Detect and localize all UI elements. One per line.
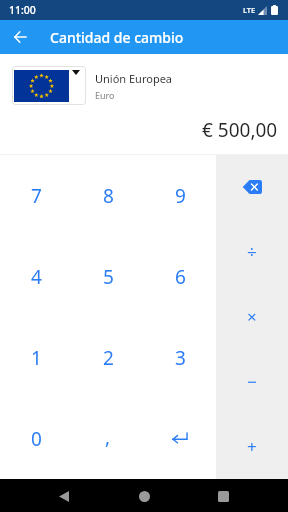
button[interactable]: 4 [0, 236, 72, 317]
staticText: LTE [243, 5, 256, 15]
button[interactable]: 9 [144, 155, 216, 236]
button[interactable]: 2 [72, 317, 144, 398]
staticText: × [247, 305, 257, 328]
button[interactable]: Back [0, 20, 40, 54]
staticText: 0 [31, 426, 42, 452]
staticText: € 500,00 [202, 117, 278, 143]
staticText: ÷ [247, 240, 257, 263]
button[interactable]: , [72, 398, 144, 479]
staticText: Cantidad de cambio [50, 28, 184, 47]
button[interactable]: 5 [72, 236, 144, 317]
button[interactable]: Backspace [216, 155, 288, 219]
button[interactable]: 6 [144, 236, 216, 317]
staticText: 8 [103, 183, 114, 209]
button[interactable]: Select currency [12, 66, 86, 105]
staticText: − [247, 370, 257, 393]
button[interactable]: Add [216, 414, 288, 479]
staticText: 11:00 [9, 3, 36, 17]
staticText: 9 [175, 183, 186, 209]
button[interactable]: 1 [0, 317, 72, 398]
button[interactable]: Back [52, 484, 76, 508]
button[interactable]: 7 [0, 155, 72, 236]
staticText: 6 [175, 264, 186, 290]
staticText: , [105, 424, 111, 450]
staticText: 1 [31, 345, 42, 371]
button[interactable]: Recents [211, 484, 235, 508]
staticText: 2 [103, 345, 114, 371]
staticText: Euro [95, 89, 115, 101]
staticText: 5 [103, 264, 114, 290]
button[interactable]: Multiply [216, 284, 288, 349]
button[interactable]: Divide [216, 219, 288, 284]
button[interactable]: Enter [144, 398, 216, 479]
staticText: 4 [31, 264, 42, 290]
staticText: 7 [31, 183, 42, 209]
button[interactable]: Home [132, 484, 156, 508]
staticText: 3 [175, 345, 186, 371]
button[interactable]: 8 [72, 155, 144, 236]
button[interactable]: 3 [144, 317, 216, 398]
staticText: + [247, 435, 257, 458]
button[interactable]: Subtract [216, 349, 288, 414]
button[interactable]: 0 [0, 398, 72, 479]
staticText: Unión Europea [95, 71, 173, 86]
